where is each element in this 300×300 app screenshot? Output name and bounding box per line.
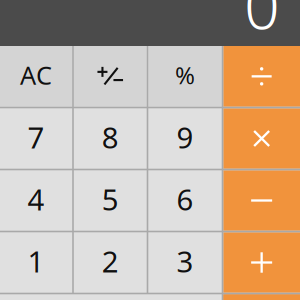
button[interactable]: Zero [0, 294, 148, 300]
button[interactable]: Subtract [223, 170, 300, 231]
button[interactable]: Equals [223, 294, 300, 300]
button[interactable]: 1 [0, 232, 72, 293]
staticText: 9 [176, 117, 193, 156]
button[interactable]: Multiply [223, 108, 300, 169]
button[interactable]: 9 [148, 108, 222, 169]
button[interactable]: 4 [0, 170, 72, 231]
button[interactable]: Add [223, 232, 300, 293]
staticText: 4 [28, 179, 45, 218]
staticText: 2 [102, 241, 119, 280]
button[interactable]: Divide [223, 46, 300, 107]
staticText: 7 [28, 117, 45, 156]
staticText: % [175, 59, 195, 91]
button[interactable]: Toggle sign [74, 46, 147, 107]
button[interactable]: 7 [0, 108, 72, 169]
button[interactable]: Decimal point [148, 294, 222, 300]
button[interactable]: 2 [74, 232, 147, 293]
button[interactable]: 6 [148, 170, 222, 231]
button[interactable]: 8 [74, 108, 147, 169]
button[interactable]: 5 [74, 170, 147, 231]
button[interactable]: 3 [148, 232, 222, 293]
staticText: 1 [28, 241, 45, 280]
staticText: AC [20, 58, 52, 92]
button[interactable]: AC [0, 46, 72, 107]
staticText: 0 [244, 0, 280, 47]
staticText: 5 [102, 179, 119, 218]
button[interactable]: % [148, 46, 222, 107]
staticText: 6 [176, 179, 193, 218]
staticText: 3 [176, 241, 193, 280]
staticText: 8 [102, 117, 119, 156]
